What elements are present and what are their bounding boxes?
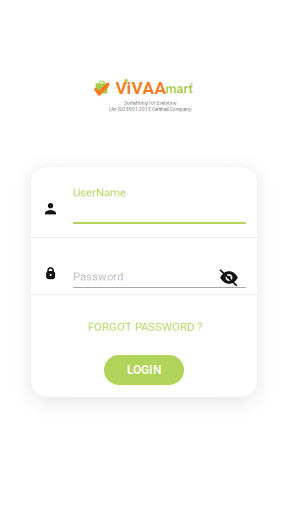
button[interactable]: UserName [31, 167, 257, 236]
staticText: FORGOT PASSWORD ? [88, 320, 202, 334]
staticText: LOGIN [127, 363, 161, 377]
button[interactable]: Password [31, 238, 257, 293]
button[interactable]: FORGOT PASSWORD ? [75, 316, 215, 338]
staticText: Something for Everyone [124, 100, 176, 106]
staticText: ViVAA [115, 78, 166, 98]
staticText: UserName [73, 186, 126, 199]
button[interactable]: LOGIN [104, 355, 184, 385]
staticText: mart [165, 82, 192, 96]
staticText: Password [73, 270, 123, 283]
staticText: (An ISO 9001:2015 Certified Company) [109, 107, 192, 112]
